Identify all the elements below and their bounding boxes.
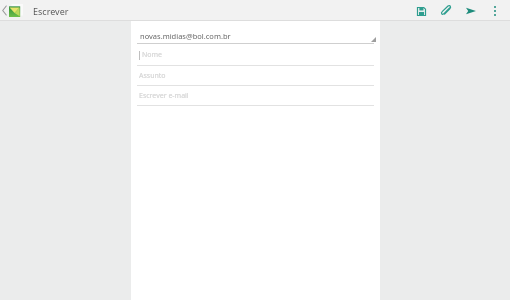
button[interactable]: Mais opções [488,4,502,18]
staticText: Nome [142,50,163,60]
button[interactable]: Navegar para cima [0,0,27,21]
staticText: novas.midias@bol.com.br [140,31,231,41]
staticText: Escrever [33,5,69,17]
button[interactable]: Anexar arquivo [438,3,454,19]
staticText: Assunto [139,71,166,81]
button[interactable]: Assunto [131,66,380,86]
button[interactable]: Enviar [463,3,479,19]
button[interactable]: Escrever e-mail [131,86,380,106]
staticText: Escrever e-mail [139,91,189,101]
button[interactable]: Nome [131,44,380,66]
button[interactable]: Salvar rascunho [413,3,429,19]
